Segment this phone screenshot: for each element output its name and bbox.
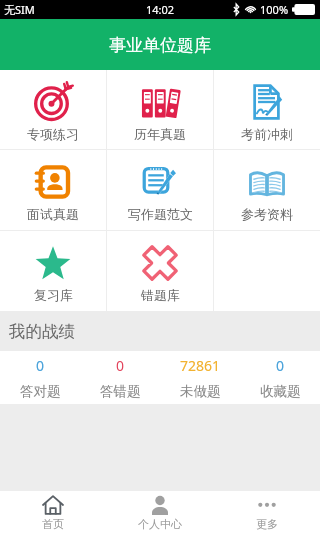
staticText: 我的战绩 [9,321,75,342]
staticText: 历年真题 [134,126,186,142]
staticText: 未做题 [180,383,221,400]
staticText: 复习库 [34,287,73,303]
button[interactable]: 复习库 [0,231,106,311]
staticText: 事业单位题库 [109,35,211,56]
button[interactable]: 0 [0,356,80,400]
staticText: 14:02 [146,2,175,17]
button[interactable]: 专项练习 [0,70,106,149]
staticText: 更多 [256,517,278,531]
staticText: 无SIM [4,2,35,17]
staticText: 参考资料 [241,206,293,222]
button[interactable]: 考前冲刺 [214,70,320,149]
staticText: 写作题范文 [128,206,193,222]
button[interactable]: 参考资料 [214,150,320,230]
button[interactable]: 历年真题 [107,70,213,149]
button[interactable]: 首页 [0,491,106,533]
staticText: 100% [260,2,289,17]
staticText: 面试真题 [27,206,79,222]
staticText: 答对题 [20,383,61,400]
staticText: 0 [36,356,45,375]
button[interactable]: 个人中心 [106,491,213,533]
button[interactable]: 0 [240,356,320,400]
staticText: 答错题 [100,383,141,400]
staticText: 0 [276,356,285,375]
staticText: 专项练习 [27,126,79,142]
button[interactable]: 0 [80,356,160,400]
staticText: 72861 [180,356,221,375]
button[interactable]: 72861 [160,356,240,400]
button[interactable]: 面试真题 [0,150,106,230]
button[interactable]: 更多 [213,491,320,533]
staticText: 错题库 [141,287,180,303]
staticText: 个人中心 [138,517,182,531]
button[interactable]: 错题库 [107,231,213,311]
other: 更多 [257,495,277,515]
other: 首页 [42,495,64,515]
staticText: 首页 [42,517,64,531]
staticText: 考前冲刺 [241,126,293,142]
other: 个人中心 [150,495,170,515]
staticText: 收藏题 [260,383,301,400]
button[interactable]: 写作题范文 [107,150,213,230]
staticText: 0 [116,356,125,375]
